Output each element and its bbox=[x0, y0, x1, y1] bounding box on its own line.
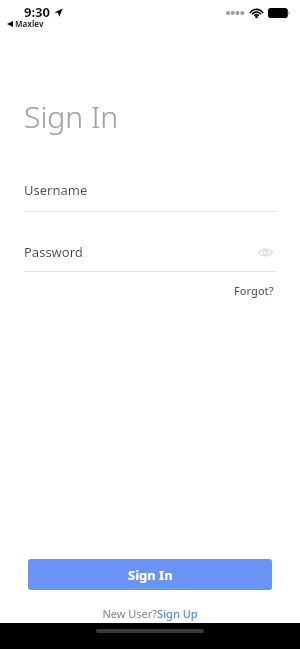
staticText: New User?Sign Up bbox=[102, 606, 198, 621]
button[interactable]: New User?Sign Up bbox=[98, 604, 202, 623]
staticText: Maxlev bbox=[15, 18, 44, 29]
button[interactable]: Forgot? bbox=[232, 281, 276, 300]
button[interactable]: Username bbox=[24, 181, 276, 212]
staticText: 9:30 bbox=[24, 3, 50, 21]
staticText: Sign In bbox=[128, 566, 173, 584]
button[interactable]: Show password bbox=[254, 241, 276, 263]
staticText: Password bbox=[24, 243, 83, 261]
button[interactable]: Password bbox=[24, 241, 276, 272]
button[interactable]: Sign In bbox=[28, 559, 272, 590]
button[interactable]: Back to Maxlev bbox=[7, 18, 44, 29]
staticText: Username bbox=[24, 181, 88, 199]
staticText: Sign In bbox=[24, 96, 119, 137]
staticText: Forgot? bbox=[234, 283, 274, 298]
